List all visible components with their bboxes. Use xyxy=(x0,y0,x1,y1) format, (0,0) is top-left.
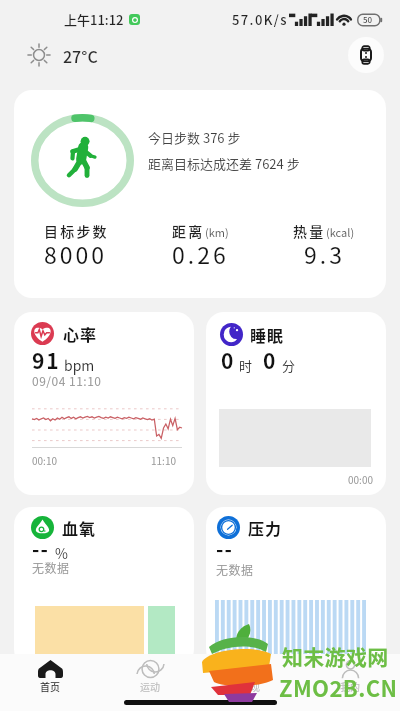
staticText: 27°C xyxy=(63,44,98,67)
staticText: 00:00 xyxy=(348,472,373,486)
staticText: (kcal) xyxy=(326,224,355,240)
button[interactable]: My device xyxy=(348,37,384,73)
staticText: 8000 xyxy=(44,237,108,270)
staticText: 分 xyxy=(282,356,296,375)
staticText: % xyxy=(55,543,68,563)
button[interactable]: 血氧 xyxy=(14,507,194,667)
staticText: 0.26 xyxy=(172,237,229,270)
staticText: 热量 xyxy=(293,221,326,241)
staticText: 首页 xyxy=(40,679,60,693)
button[interactable]: 发现 xyxy=(200,654,300,711)
button[interactable]: 我的 xyxy=(300,654,400,711)
staticText: 无数据 xyxy=(216,561,254,578)
staticText: 今日步数 376 步 xyxy=(148,128,241,147)
button[interactable]: 睡眠 xyxy=(206,312,386,495)
staticText: 运动 xyxy=(140,679,160,693)
staticText: 0 xyxy=(263,345,276,375)
staticText: 09/04 11:10 xyxy=(32,372,102,389)
staticText: 心率 xyxy=(63,322,98,345)
button[interactable]: 今日步数 376 步 xyxy=(14,90,386,298)
staticText: 11:10 xyxy=(151,453,176,467)
staticText: (km) xyxy=(205,224,229,240)
staticText: 无数据 xyxy=(32,559,70,576)
staticText: 57.0K/s xyxy=(232,10,288,29)
staticText: 我的 xyxy=(340,679,360,693)
staticText: 00:10 xyxy=(32,453,57,467)
staticText: 上午11:12 xyxy=(64,10,124,29)
staticText: 睡眠 xyxy=(250,323,285,346)
staticText: 时 xyxy=(239,356,253,375)
staticText: bpm xyxy=(64,355,95,375)
staticText: 目标步数 xyxy=(44,221,109,241)
staticText: 9.3 xyxy=(304,237,345,270)
staticText: -- xyxy=(32,534,49,563)
button[interactable]: 首页 xyxy=(0,654,100,711)
staticText: 知末游戏网 xyxy=(282,641,389,671)
staticText: 发现 xyxy=(240,679,260,693)
button[interactable]: 压力 xyxy=(206,507,386,667)
staticText: 血氧 xyxy=(62,516,97,539)
staticText: -- xyxy=(216,534,233,563)
staticText: ZMO2B.CN xyxy=(279,671,398,703)
staticText: 距离目标达成还差 7624 步 xyxy=(148,154,300,173)
staticText: 91 xyxy=(32,345,61,375)
staticText: 0 xyxy=(221,345,234,375)
staticText: 压力 xyxy=(248,516,283,539)
button[interactable]: 心率 xyxy=(14,312,194,495)
button[interactable]: 运动 xyxy=(100,654,200,711)
staticText: 距离 xyxy=(172,221,205,241)
staticText: 50 xyxy=(363,14,373,26)
